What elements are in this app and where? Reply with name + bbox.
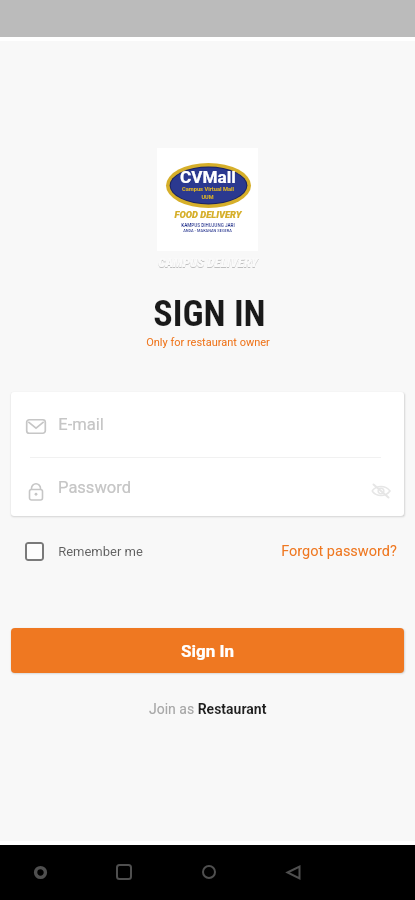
- button[interactable]: E-mail: [11, 392, 404, 457]
- staticText: Password: [58, 478, 131, 497]
- staticText: CAMPUS DELIVERY: [158, 256, 258, 271]
- staticText: Campus Virtual Mall: [182, 186, 234, 193]
- staticText: SIGN IN: [153, 293, 266, 335]
- button[interactable]: Forgot password?: [277, 535, 401, 568]
- staticText: ANDA - MAKANAN SEGERA: [183, 228, 232, 233]
- button[interactable]: Password: [11, 458, 404, 516]
- button[interactable]: Back: [283, 862, 303, 882]
- button[interactable]: Sign In: [11, 628, 404, 673]
- button[interactable]: Show password: [368, 478, 394, 504]
- staticText: Forgot password?: [281, 543, 397, 560]
- button[interactable]: Assistant: [30, 862, 50, 882]
- staticText: UUM: [201, 194, 214, 200]
- button[interactable]: Remember me: [14, 535, 154, 568]
- button[interactable]: Join as Restaurant: [135, 694, 281, 724]
- staticText: FOOD DELIVERY: [174, 209, 242, 220]
- staticText: Only for restaurant owner: [146, 336, 270, 349]
- staticText: Join as Restaurant: [149, 701, 267, 717]
- staticText: CAMPUS DELIVERY: [158, 255, 258, 270]
- staticText: Sign In: [181, 641, 234, 661]
- staticText: Remember me: [58, 544, 143, 559]
- staticText: CVMall: [180, 167, 236, 187]
- staticText: KAMPUS DIHUJUNG JARI: [181, 223, 235, 228]
- button[interactable]: Home: [199, 862, 219, 882]
- staticText: E-mail: [58, 415, 104, 434]
- button[interactable]: Recents: [114, 862, 134, 882]
